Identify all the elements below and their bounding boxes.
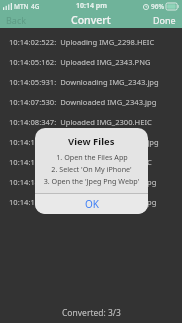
staticText: 10:14:08:347: Uploaded IMG_2300.HEIC xyxy=(9,117,152,127)
button[interactable]: Back xyxy=(0,12,33,28)
staticText: 1. Open the Files App xyxy=(56,152,128,162)
staticText: 2. Select 'On My iPhone' xyxy=(51,164,132,174)
staticText: 10:14:05:931: Downloading IMG_2343.jpg xyxy=(9,77,159,87)
staticText: 10:14:02:522: Uploading IMG_2298.HEIC xyxy=(9,37,155,47)
staticText: MTN xyxy=(14,2,29,11)
staticText: 10:14:11:118: Downloading IMG_2300.jpg xyxy=(9,137,159,147)
staticText: 10:14:12:904: Uploaded IMG_2298.HEIC xyxy=(9,157,152,167)
staticText: Back xyxy=(6,14,27,26)
staticText: Done xyxy=(153,14,176,26)
button[interactable]: Done xyxy=(147,12,182,28)
staticText: 3. Open the 'Jpeg Png Webp' Folder xyxy=(40,176,143,186)
staticText: 10:14:17:356: Downloaded IMG_2298.jpg xyxy=(9,197,157,207)
staticText: 10:14:05:162: Uploaded IMG_2343.PNG xyxy=(9,57,151,67)
staticText: 10:14 pm xyxy=(76,1,107,11)
staticText: 96% xyxy=(151,2,164,11)
staticText: View Files xyxy=(68,135,115,148)
staticText: 10:14:14:241: Downloaded IMG_2300.jpg xyxy=(9,177,157,187)
staticText: 10:14:07:530: Downloaded IMG_2343.jpg xyxy=(9,97,157,107)
staticText: Convert xyxy=(71,13,111,27)
staticText: 4G xyxy=(31,2,40,11)
staticText: OK xyxy=(85,197,99,211)
button[interactable]: OK xyxy=(35,194,148,214)
staticText: Converted: 3/3 xyxy=(62,307,121,319)
